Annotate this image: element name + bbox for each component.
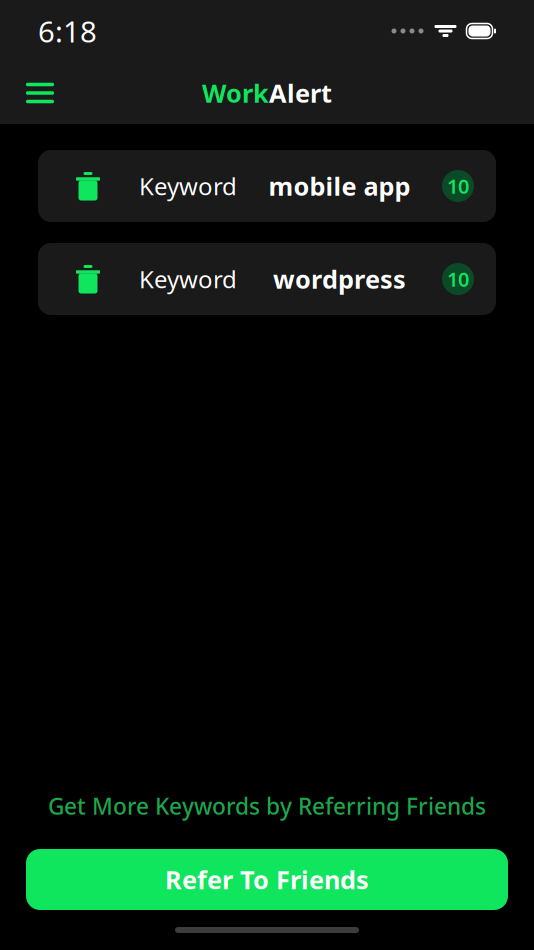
staticText: Alert bbox=[269, 76, 332, 110]
staticText: Refer To Friends bbox=[165, 863, 369, 896]
button[interactable]: Keyword bbox=[38, 243, 496, 315]
button[interactable]: Menu bbox=[14, 70, 66, 116]
staticText: wordpress bbox=[273, 262, 406, 296]
button[interactable]: Refer To Friends bbox=[26, 849, 508, 910]
staticText: 6:18 bbox=[38, 11, 97, 50]
staticText: mobile app bbox=[268, 169, 410, 203]
button[interactable]: Keyword bbox=[38, 150, 496, 222]
staticText: Keyword bbox=[139, 263, 237, 295]
staticText: 10 bbox=[447, 173, 469, 199]
staticText: 10 bbox=[447, 266, 469, 292]
staticText: Get More Keywords by Referring Friends bbox=[48, 791, 486, 821]
staticText: Work bbox=[202, 76, 269, 110]
staticText: Keyword bbox=[139, 170, 237, 202]
